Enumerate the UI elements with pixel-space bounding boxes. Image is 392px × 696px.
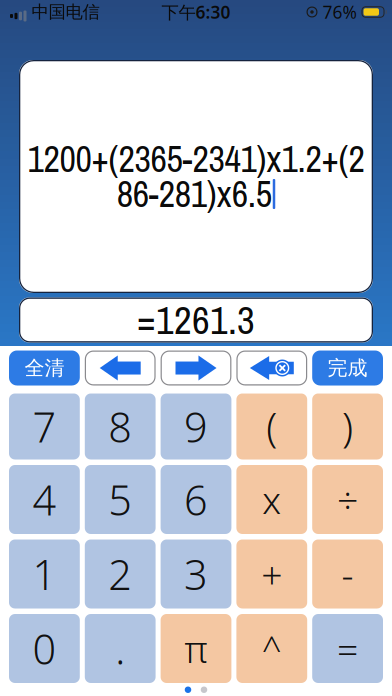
staticText: 3 (184, 547, 208, 601)
staticText: 1200+(2365-2341)x1.2+(2 (27, 135, 364, 183)
button[interactable]: 全清 (9, 350, 80, 385)
button[interactable]: = (312, 614, 383, 683)
staticText: x (262, 475, 281, 524)
button[interactable]: x (236, 465, 307, 534)
staticText: =1261.3 (137, 294, 255, 346)
button[interactable]: 4 (9, 465, 80, 534)
staticText: 2 (108, 547, 132, 601)
button[interactable]: ^ (236, 614, 307, 683)
button[interactable] (161, 350, 231, 385)
staticText: 6 (184, 472, 208, 527)
staticText: π (184, 624, 207, 673)
button[interactable]: ) (312, 393, 383, 459)
staticText: 8 (108, 399, 132, 454)
staticText: ) (342, 400, 353, 453)
button[interactable] (236, 350, 307, 385)
staticText: 7 (32, 399, 56, 454)
button[interactable]: - (312, 539, 383, 608)
button[interactable]: + (236, 539, 307, 608)
button[interactable]: 7 (9, 393, 80, 459)
staticText: 下午6:30 (161, 0, 230, 23)
button[interactable]: ÷ (312, 465, 383, 534)
button[interactable]: 5 (85, 465, 156, 534)
button[interactable]: 6 (161, 465, 231, 534)
button[interactable]: 0 (9, 614, 80, 683)
button[interactable]: 2 (85, 539, 156, 608)
button[interactable]: ( (236, 393, 307, 459)
button[interactable] (85, 350, 156, 385)
staticText: + (261, 549, 282, 599)
button[interactable]: 9 (161, 393, 231, 459)
staticText: ^ (262, 625, 282, 671)
staticText: ÷ (337, 475, 358, 524)
button[interactable]: 1 (9, 539, 80, 608)
button[interactable]: 8 (85, 393, 156, 459)
button[interactable]: . (85, 614, 156, 683)
staticText: = (337, 624, 358, 673)
button[interactable]: 完成 (312, 350, 383, 385)
button[interactable]: π (161, 614, 231, 683)
staticText: 0 (32, 621, 56, 676)
button[interactable]: 3 (161, 539, 231, 608)
staticText: 86-281)x6.5 (117, 170, 272, 218)
staticText: 中国电信 (31, 1, 99, 23)
staticText: ( (266, 400, 277, 453)
staticText: 76% (322, 0, 356, 23)
staticText: 全清 (24, 356, 64, 380)
staticText: 1 (32, 547, 56, 601)
staticText: 9 (184, 399, 208, 454)
staticText: 4 (32, 472, 56, 527)
staticText: 完成 (328, 356, 368, 380)
staticText: . (115, 621, 125, 676)
staticText: 5 (108, 472, 132, 527)
staticText: - (342, 549, 354, 599)
